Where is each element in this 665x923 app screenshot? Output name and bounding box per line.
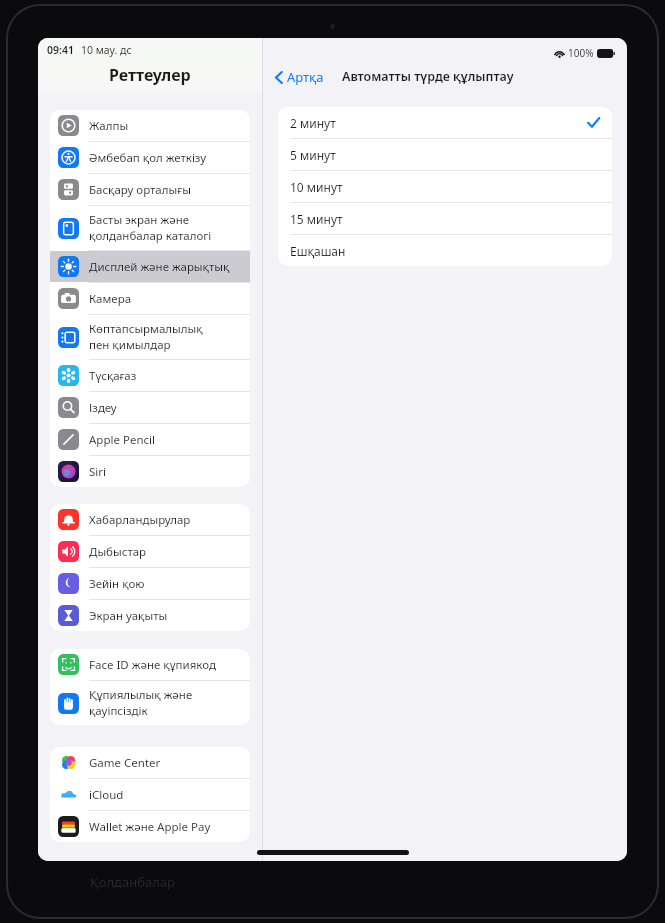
staticText: Түсқағаз xyxy=(89,368,137,384)
button[interactable]: Дыбыстар xyxy=(50,536,250,567)
staticText: Face ID және құпиякод xyxy=(89,657,216,673)
button[interactable]: Siri xyxy=(50,456,250,487)
staticText: Іздеу xyxy=(89,400,117,416)
staticText: Реттеулер xyxy=(109,64,191,86)
button[interactable]: Зейін қою xyxy=(50,568,250,599)
staticText: 09:41 xyxy=(47,43,74,57)
staticText: 10 минут xyxy=(290,179,343,195)
button[interactable]: Экран уақыты xyxy=(50,600,250,631)
button[interactable]: Ешқашан xyxy=(278,235,612,266)
button[interactable]: Game Center xyxy=(50,747,250,778)
staticText: Зейін қою xyxy=(89,576,145,592)
button[interactable]: Apple Pencil xyxy=(50,424,250,455)
staticText: Камера xyxy=(89,291,132,307)
button[interactable]: Басты экран және xyxy=(50,206,250,250)
staticText: қауіпсіздік xyxy=(89,703,148,719)
staticText: 10 мау. дс xyxy=(81,43,132,57)
button[interactable]: Хабарландырулар xyxy=(50,504,250,535)
button[interactable]: 10 минут xyxy=(278,171,612,202)
button[interactable]: iCloud xyxy=(50,779,250,810)
staticText: Артқа xyxy=(287,68,324,86)
button[interactable]: Дисплей және жарықтық xyxy=(50,251,250,282)
staticText: Экран уақыты xyxy=(89,608,168,624)
staticText: 100% xyxy=(568,46,594,60)
button[interactable]: 5 минут xyxy=(278,139,612,170)
button[interactable]: Артқа xyxy=(275,68,324,86)
button[interactable]: Face ID және құпиякод xyxy=(50,649,250,680)
button[interactable]: Әмбебап қол жеткізу xyxy=(50,142,250,173)
button[interactable]: Камера xyxy=(50,283,250,314)
staticText: Хабарландырулар xyxy=(89,512,191,528)
staticText: қолданбалар каталогі xyxy=(89,228,212,244)
button[interactable]: Іздеу xyxy=(50,392,250,423)
button[interactable]: 2 минут xyxy=(278,107,612,138)
button[interactable]: Көптапсырмалылық xyxy=(50,315,250,359)
staticText: Wallet және Apple Pay xyxy=(89,819,211,835)
staticText: Дыбыстар xyxy=(89,544,147,560)
staticText: Жалпы xyxy=(89,118,129,134)
staticText: пен қимылдар xyxy=(89,337,171,353)
button[interactable]: 15 минут xyxy=(278,203,612,234)
button[interactable]: Жалпы xyxy=(50,110,250,141)
staticText: Қолданбалар xyxy=(90,873,175,891)
button[interactable]: Түсқағаз xyxy=(50,360,250,391)
staticText: Ешқашан xyxy=(290,243,346,259)
staticText: Басқару орталығы xyxy=(89,182,191,198)
staticText: Apple Pencil xyxy=(89,432,155,448)
staticText: Басты экран және xyxy=(89,212,190,228)
button[interactable]: Wallet және Apple Pay xyxy=(50,811,250,842)
staticText: Siri xyxy=(89,464,106,480)
staticText: 5 минут xyxy=(290,147,336,163)
staticText: Көптапсырмалылық xyxy=(89,321,203,337)
button[interactable]: Құпиялылық және xyxy=(50,681,250,725)
staticText: Әмбебап қол жеткізу xyxy=(89,150,207,166)
staticText: 15 минут xyxy=(290,211,343,227)
button[interactable]: Басқару орталығы xyxy=(50,174,250,205)
staticText: 2 минут xyxy=(290,115,336,131)
staticText: Game Center xyxy=(89,755,161,771)
staticText: iCloud xyxy=(89,787,124,803)
staticText: Дисплей және жарықтық xyxy=(89,259,230,275)
staticText: Автоматты түрде құлыптау xyxy=(342,68,514,85)
staticText: Құпиялылық және xyxy=(89,687,193,703)
